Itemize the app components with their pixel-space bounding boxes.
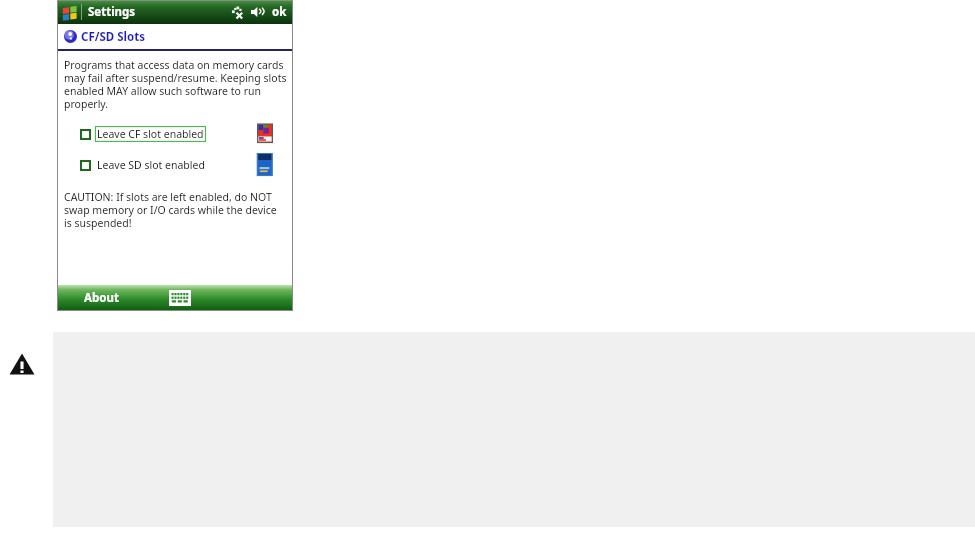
button[interactable]: ok [271,4,288,20]
button[interactable]: Leave SD slot enabled [64,158,205,172]
staticText: Leave SD slot enabled [97,158,205,172]
staticText: CAUTION: If slots are left enabled, do N… [64,190,287,230]
staticText: Settings [88,4,136,20]
staticText: ok [272,4,287,20]
button[interactable]: Keyboard [169,290,191,306]
button[interactable]: About [57,285,139,311]
button[interactable]: Leave CF slot enabled [64,126,206,142]
button[interactable]: Start menu [61,5,76,20]
staticText: CF/SD Slots [81,29,145,45]
staticText: About [84,290,119,306]
button[interactable]: Volume [250,4,266,20]
staticText: Programs that access data on memory card… [64,58,287,111]
other: CF card [255,122,275,146]
button[interactable]: Connectivity off [231,4,247,20]
staticText: Leave CF slot enabled [97,127,204,141]
other: SD card [255,153,275,177]
